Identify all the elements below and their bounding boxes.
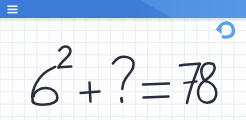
button[interactable]: Undo <box>211 18 241 40</box>
button[interactable]: Open navigation menu <box>3 1 23 18</box>
